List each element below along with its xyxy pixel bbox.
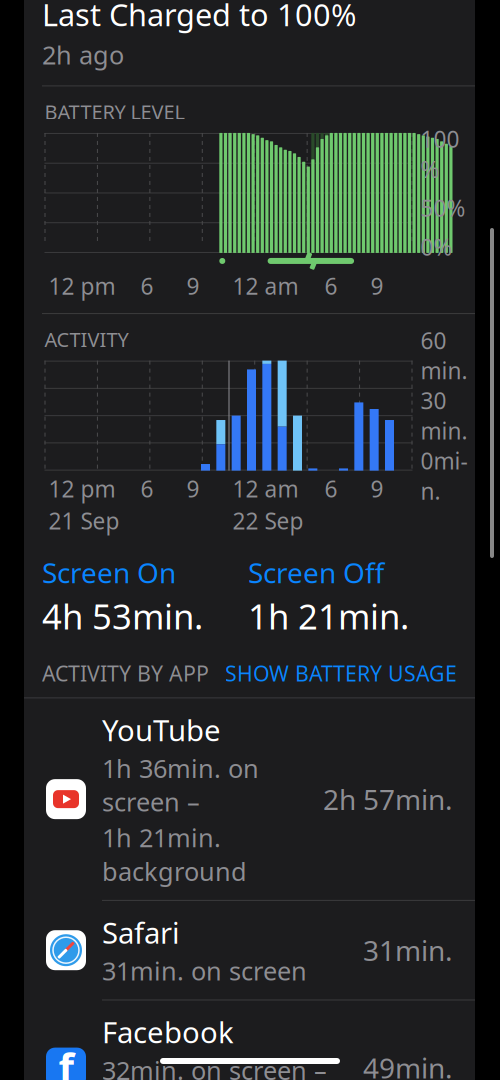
button[interactable]: SHOW BATTERY USAGE xyxy=(225,659,457,687)
staticText: 6 xyxy=(140,474,153,504)
staticText: SHOW BATTERY USAGE xyxy=(225,659,457,687)
staticText: BATTERY LEVEL xyxy=(44,98,184,125)
staticText: 0min. xyxy=(420,446,467,506)
staticText: Screen On xyxy=(42,554,176,591)
staticText: 6 xyxy=(324,271,337,301)
staticText: 9 xyxy=(370,271,383,301)
staticText: 6 xyxy=(324,474,337,504)
staticText: 1h 21min. background xyxy=(102,821,247,888)
staticText: 1h 21min. xyxy=(248,593,409,639)
staticText: 2h 57min. xyxy=(323,780,453,818)
staticText: 6 xyxy=(140,271,153,301)
staticText: 100% xyxy=(420,124,459,184)
staticText: 30min. xyxy=(420,385,467,446)
staticText: 31min. on screen xyxy=(102,954,307,987)
staticText: ACTIVITY BY APP xyxy=(42,659,209,687)
staticText: 21 Sep xyxy=(48,506,119,536)
staticText: Screen Off xyxy=(248,554,384,591)
staticText: 4h 53min. xyxy=(42,593,203,639)
button[interactable]: f xyxy=(24,1000,475,1080)
staticText: 0% xyxy=(420,232,452,262)
staticText: 49min. xyxy=(363,1049,453,1080)
staticText: 50% xyxy=(420,193,465,223)
staticText: Safari xyxy=(102,913,180,952)
staticText: 31min. xyxy=(363,932,453,969)
button[interactable]: Safari xyxy=(24,901,475,999)
staticText: 22 Sep xyxy=(232,506,303,536)
staticText: 12 am xyxy=(232,474,298,504)
staticText: 9 xyxy=(370,474,383,504)
staticText: 1h 36min. on screen – xyxy=(102,751,259,819)
staticText: 12 pm xyxy=(48,474,115,504)
staticText: 60min. xyxy=(420,325,467,385)
staticText: 9 xyxy=(186,271,199,301)
staticText: f xyxy=(58,1040,73,1080)
staticText: 32min. on screen – xyxy=(102,1053,327,1080)
staticText: 9 xyxy=(186,474,199,504)
staticText: 12 pm xyxy=(48,271,115,301)
button[interactable]: YouTube xyxy=(24,698,475,900)
staticText: ACTIVITY xyxy=(44,326,128,353)
staticText: 12 am xyxy=(232,271,298,301)
staticText: Last Charged to 100% xyxy=(42,0,356,35)
staticText: 2h ago xyxy=(42,38,124,71)
staticText: Facebook xyxy=(102,1012,234,1051)
staticText: YouTube xyxy=(102,710,221,749)
